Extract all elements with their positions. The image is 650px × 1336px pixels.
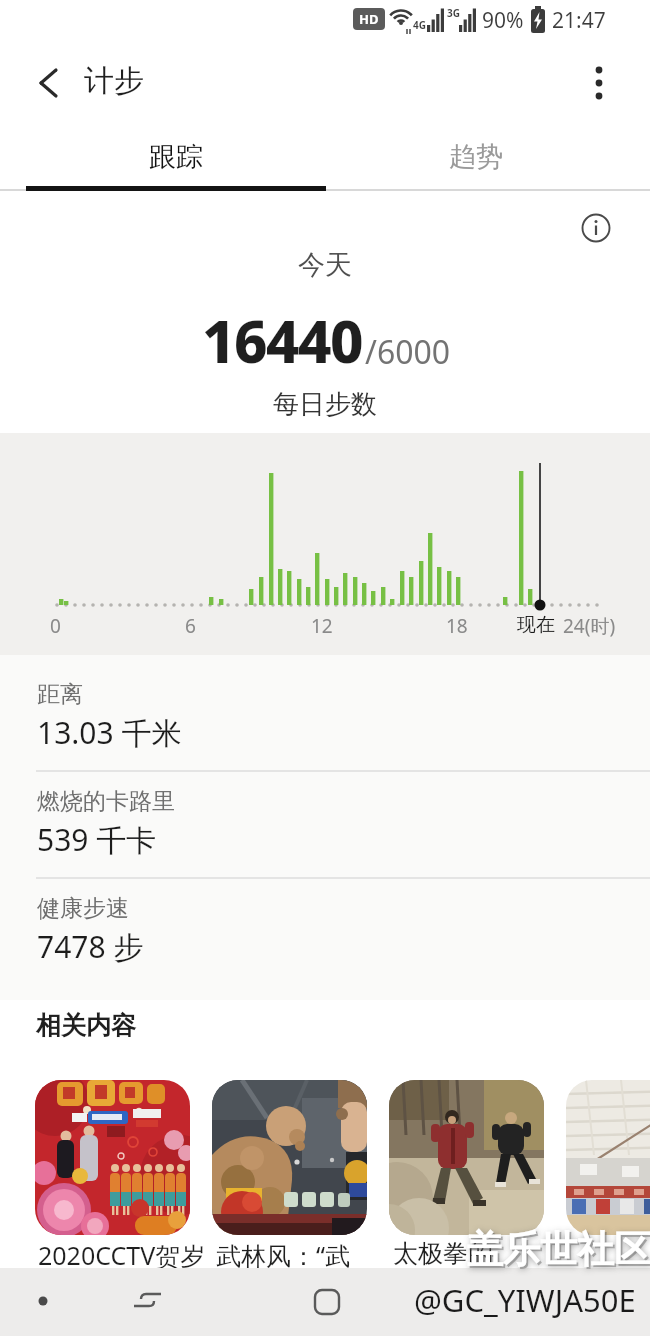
button[interactable]	[212, 1080, 367, 1235]
button[interactable]	[0, 655, 650, 771]
staticText: @GC_YIWJA50E	[414, 1279, 636, 1321]
staticText: 2020CCTV贺岁	[38, 1238, 206, 1272]
staticText: 16440	[202, 301, 363, 380]
staticText: 趋势	[449, 140, 503, 174]
staticText: 现在	[517, 613, 555, 637]
staticText: 24(时)	[563, 613, 616, 639]
staticText: 跟踪	[149, 140, 203, 174]
staticText: 计步	[84, 62, 144, 100]
button[interactable]	[579, 211, 613, 245]
button[interactable]: 趋势	[326, 122, 626, 192]
staticText: 12	[311, 613, 333, 639]
staticText: 6	[185, 613, 196, 639]
staticText: 539 千卡	[37, 819, 157, 860]
staticText: 太极拳的	[393, 1238, 493, 1269]
staticText: 18	[446, 613, 468, 639]
staticText: 盖乐世社区	[466, 1226, 650, 1273]
button[interactable]	[300, 1278, 352, 1330]
staticText: 21:47	[552, 6, 606, 35]
staticText: 90%	[482, 6, 524, 35]
staticText: 7478 步	[37, 926, 144, 967]
button[interactable]	[20, 1278, 66, 1324]
staticText: 今天	[298, 248, 352, 282]
staticText: 距离	[37, 680, 83, 709]
button[interactable]	[582, 64, 616, 98]
staticText: 健康步速	[37, 894, 129, 923]
staticText: /6000	[365, 330, 451, 374]
button[interactable]	[0, 771, 650, 878]
staticText: 武林风：“武	[216, 1238, 350, 1272]
button[interactable]: 跟踪	[26, 122, 326, 192]
staticText: 13.03 千米	[37, 712, 182, 753]
staticText: 0	[50, 613, 61, 639]
staticText: 盖乐世社区	[468, 1228, 650, 1275]
staticText: 燃烧的卡路里	[37, 787, 175, 816]
staticText: HD	[359, 10, 379, 28]
button[interactable]	[0, 878, 650, 985]
button[interactable]	[480, 1278, 532, 1330]
button[interactable]	[389, 1080, 544, 1235]
button[interactable]	[566, 1080, 650, 1235]
staticText: 相关内容	[36, 1010, 136, 1041]
button[interactable]	[120, 1278, 172, 1330]
staticText: 3G	[447, 6, 460, 20]
staticText: 每日步数	[273, 388, 377, 421]
button[interactable]	[35, 1080, 190, 1235]
button[interactable]	[30, 64, 68, 102]
staticText: 4G	[413, 18, 426, 32]
